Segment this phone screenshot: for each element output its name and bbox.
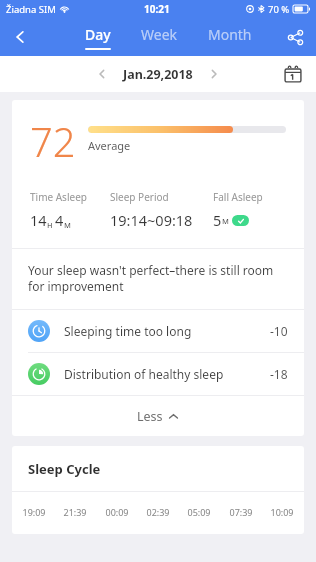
button[interactable]: Day [83, 25, 113, 50]
staticText: Your sleep wasn't perfect–there is still… [28, 262, 288, 295]
staticText: н [47, 218, 53, 230]
button[interactable]: Distribution of healthy sleep [12, 353, 304, 395]
staticText: м [222, 214, 229, 226]
staticText: 5 [213, 210, 222, 230]
staticText: -18 [270, 366, 288, 382]
staticText: Sleep Period [110, 190, 169, 204]
button[interactable]: Less [12, 396, 304, 436]
staticText: Less [137, 408, 163, 425]
staticText: Month [208, 25, 252, 44]
button[interactable]: Share [274, 18, 316, 56]
staticText: Day [85, 25, 111, 44]
staticText: Sleeping time too long [64, 323, 270, 339]
staticText: Fall Asleep [213, 190, 263, 204]
staticText: Jan.29,2018 [123, 66, 193, 83]
staticText: -10 [270, 323, 288, 339]
button[interactable]: Previous day [89, 61, 115, 87]
staticText: 07:39 [229, 506, 253, 518]
button[interactable]: Week [139, 25, 180, 50]
staticText: 19:14~09:18 [110, 210, 193, 230]
staticText: 00:09 [105, 506, 129, 518]
staticText: 4 [55, 210, 64, 230]
staticText: 02:39 [146, 506, 170, 518]
button[interactable]: Month [206, 25, 254, 50]
staticText: 70 % [268, 3, 290, 16]
staticText: Week [141, 25, 178, 44]
staticText: 10:21 [144, 2, 170, 16]
staticText: Time Asleep [30, 190, 87, 204]
staticText: 14 [30, 210, 47, 230]
staticText: 10:09 [270, 506, 294, 518]
staticText: 19:09 [22, 506, 46, 518]
staticText: м [64, 218, 71, 230]
staticText: Sleep Cycle [28, 460, 101, 478]
staticText: 05:09 [187, 506, 211, 518]
button[interactable]: Back [0, 18, 40, 56]
staticText: Distribution of healthy sleep [64, 366, 270, 382]
staticText: Average [88, 138, 131, 153]
button[interactable]: Sleeping time too long [12, 310, 304, 352]
button[interactable]: Next day [201, 61, 227, 87]
button[interactable]: Calendar [280, 61, 306, 87]
staticText: 21:39 [63, 506, 87, 518]
staticText: 72 [30, 114, 76, 168]
staticText: Žiadna SIM [6, 3, 56, 16]
